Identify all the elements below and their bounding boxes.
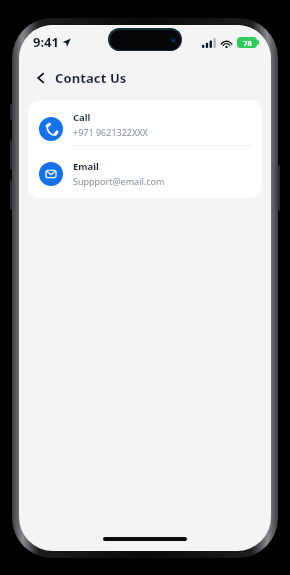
staticText: Email (73, 160, 99, 173)
button[interactable]: Call (28, 104, 262, 153)
staticText: 78 (243, 38, 252, 48)
staticText: 9:41 (33, 33, 59, 51)
staticText: +971 9621322XXX (73, 126, 148, 138)
staticText: Call (73, 111, 91, 124)
staticText: Contact Us (55, 69, 127, 87)
button[interactable]: Back (31, 68, 51, 88)
staticText: Suppport@email.com (73, 175, 165, 187)
button[interactable]: Email (28, 153, 262, 194)
